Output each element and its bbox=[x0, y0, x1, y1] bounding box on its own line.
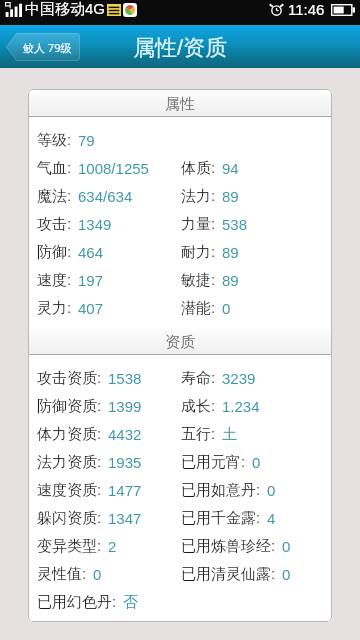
staticText: 已用炼兽珍经: bbox=[181, 537, 276, 556]
staticText: 89 bbox=[222, 188, 239, 205]
staticText: 灵性值: bbox=[37, 565, 87, 584]
staticText: 躲闪资质: bbox=[37, 509, 102, 528]
staticText: 法力: bbox=[181, 187, 216, 206]
staticText: 耐力: bbox=[181, 243, 216, 262]
staticText: 体力资质: bbox=[37, 425, 102, 444]
staticText: 法力资质: bbox=[37, 453, 102, 472]
staticText: 已用元宵: bbox=[181, 453, 246, 472]
staticText: 攻击: bbox=[37, 215, 72, 234]
staticText: 已用如意丹: bbox=[181, 481, 261, 500]
staticText: 速度: bbox=[37, 271, 72, 290]
staticText: 否 bbox=[123, 593, 138, 612]
staticText: 五行: bbox=[181, 425, 216, 444]
staticText: 464 bbox=[78, 244, 104, 261]
staticText: 407 bbox=[78, 300, 104, 317]
staticText: 灵力: bbox=[37, 299, 72, 318]
staticText: 气血: bbox=[37, 159, 72, 178]
staticText: 1.234 bbox=[222, 398, 260, 415]
staticText: 79 bbox=[78, 132, 95, 149]
staticText: 0 bbox=[282, 538, 291, 555]
staticText: 1538 bbox=[108, 370, 142, 387]
staticText: 89 bbox=[222, 244, 239, 261]
staticText: 1008/1255 bbox=[78, 160, 149, 177]
staticText: 已用千金露: bbox=[181, 509, 261, 528]
staticText: 敏捷: bbox=[181, 271, 216, 290]
staticText: 属性/资质 bbox=[133, 34, 228, 62]
staticText: 已用清灵仙露: bbox=[181, 565, 276, 584]
staticText: 资质 bbox=[165, 333, 195, 352]
staticText: 1349 bbox=[78, 216, 112, 233]
staticText: 鲛人 79级 bbox=[23, 40, 72, 55]
staticText: 属性 bbox=[165, 95, 195, 114]
staticText: 寿命: bbox=[181, 369, 216, 388]
staticText: 1935 bbox=[108, 454, 142, 471]
staticText: 94 bbox=[222, 160, 239, 177]
staticText: 0 bbox=[222, 300, 231, 317]
button[interactable]: 鲛人 79级 bbox=[6, 33, 80, 61]
staticText: 已用幻色丹: bbox=[37, 593, 117, 612]
staticText: 潜能: bbox=[181, 299, 216, 318]
staticText: 体质: bbox=[181, 159, 216, 178]
staticText: 变异类型: bbox=[37, 537, 102, 556]
staticText: 等级: bbox=[37, 131, 72, 150]
staticText: 197 bbox=[78, 272, 104, 289]
staticText: 2 bbox=[108, 538, 117, 555]
staticText: 成长: bbox=[181, 397, 216, 416]
staticText: 0 bbox=[252, 454, 261, 471]
staticText: 攻击资质: bbox=[37, 369, 102, 388]
staticText: 1347 bbox=[108, 510, 142, 527]
staticText: 1399 bbox=[108, 398, 142, 415]
staticText: 3239 bbox=[222, 370, 256, 387]
staticText: 4432 bbox=[108, 426, 142, 443]
staticText: 力量: bbox=[181, 215, 216, 234]
staticText: 1477 bbox=[108, 482, 142, 499]
staticText: 防御资质: bbox=[37, 397, 102, 416]
staticText: 防御: bbox=[37, 243, 72, 262]
staticText: 11:46 bbox=[288, 1, 325, 18]
staticText: 0 bbox=[282, 566, 291, 583]
staticText: 0 bbox=[267, 482, 276, 499]
staticText: 土 bbox=[222, 425, 237, 444]
staticText: 89 bbox=[222, 272, 239, 289]
staticText: 0 bbox=[93, 566, 102, 583]
staticText: 538 bbox=[222, 216, 248, 233]
staticText: 4 bbox=[267, 510, 276, 527]
staticText: 魔法: bbox=[37, 187, 72, 206]
staticText: 速度资质: bbox=[37, 481, 102, 500]
staticText: 中国移动4G bbox=[25, 0, 106, 19]
staticText: 634/634 bbox=[78, 188, 133, 205]
